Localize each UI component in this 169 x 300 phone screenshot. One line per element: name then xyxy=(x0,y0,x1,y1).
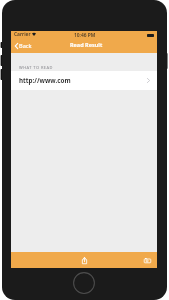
staticText: 10:46 PM xyxy=(74,32,96,39)
button[interactable]: Share xyxy=(77,252,91,268)
staticText: Read Result xyxy=(70,41,103,49)
button[interactable]: Camera xyxy=(140,252,154,268)
staticText: http://www.com xyxy=(19,76,71,85)
staticText: Back xyxy=(19,42,32,50)
staticText: WHAT TO READ xyxy=(19,65,53,70)
button[interactable]: http://www.com xyxy=(11,71,157,90)
button[interactable]: Back xyxy=(15,39,32,53)
staticText: Carrier xyxy=(14,31,31,38)
